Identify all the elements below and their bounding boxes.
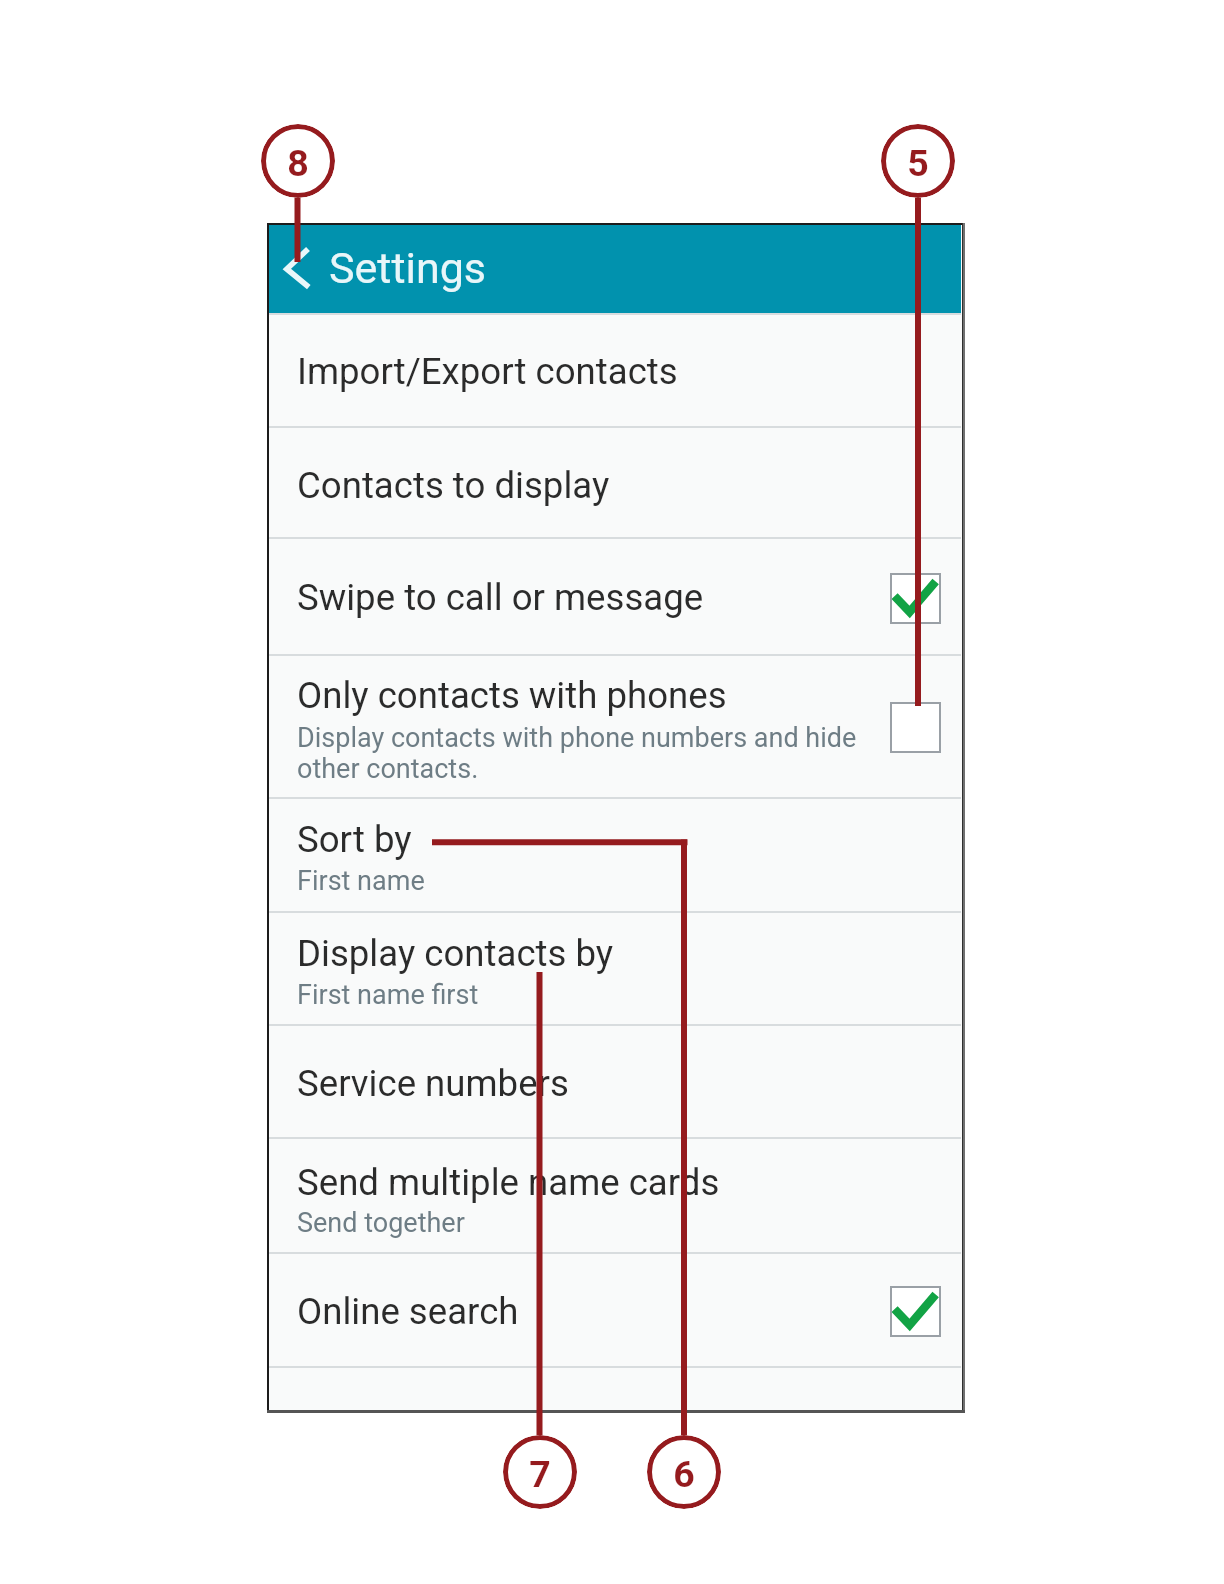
button[interactable]: Service numbers (269, 1025, 961, 1138)
staticText: Display contacts by (297, 932, 614, 975)
button[interactable]: Contacts to display (269, 427, 961, 538)
staticText: First name (297, 865, 425, 897)
button[interactable]: Only contacts with phones (890, 702, 941, 753)
button[interactable]: Online search (269, 1253, 961, 1368)
button[interactable]: Display contacts by (269, 912, 961, 1025)
button[interactable]: Swipe to call or message (890, 573, 941, 624)
button[interactable]: Import/Export contacts (269, 314, 961, 427)
staticText: Contacts to display (297, 464, 610, 507)
staticText: Service numbers (297, 1062, 569, 1105)
button[interactable]: Swipe to call or message (269, 538, 961, 655)
staticText: Only contacts with phones (297, 674, 727, 717)
staticText: Display contacts with phone numbers and … (297, 722, 857, 754)
staticText: First name first (297, 979, 479, 1011)
staticText: Settings (329, 243, 487, 293)
button[interactable]: Navigate up (269, 225, 325, 314)
button[interactable]: Only contacts with phones (269, 655, 961, 798)
staticText: Swipe to call or message (297, 576, 704, 619)
staticText: Send together (297, 1207, 465, 1239)
button[interactable]: Send multiple name cards (269, 1138, 961, 1253)
staticText: 5 (907, 141, 929, 185)
staticText: Online search (297, 1290, 519, 1333)
staticText: Sort by (297, 818, 412, 861)
button[interactable]: Sort by (269, 798, 961, 912)
staticText: 7 (529, 1452, 551, 1496)
staticText: 6 (673, 1452, 695, 1496)
staticText: Send multiple name cards (297, 1161, 720, 1204)
staticText: Import/Export contacts (297, 350, 678, 393)
staticText: 8 (287, 141, 309, 185)
button[interactable]: Online search (890, 1286, 941, 1337)
staticText: other contacts. (297, 753, 479, 785)
